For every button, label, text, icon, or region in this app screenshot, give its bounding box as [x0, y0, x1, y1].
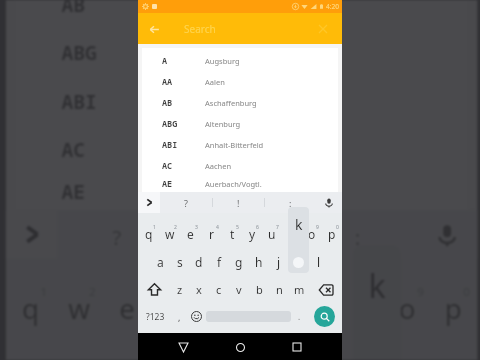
button[interactable]: w: [159, 220, 180, 248]
button[interactable]: c: [209, 276, 229, 303]
button[interactable]: k: [289, 248, 309, 276]
button[interactable]: Back: [143, 18, 165, 40]
button[interactable]: u: [292, 275, 339, 340]
button[interactable]: g: [216, 339, 262, 360]
button[interactable]: d: [189, 248, 209, 276]
button[interactable]: n: [269, 276, 289, 303]
button[interactable]: ABI: [15, 76, 468, 125]
button[interactable]: w: [54, 275, 103, 340]
staticText: AB: [61, 0, 161, 18]
button[interactable]: AE: [142, 176, 338, 192]
button[interactable]: u: [262, 220, 282, 248]
button[interactable]: t: [200, 275, 246, 340]
button[interactable]: Voice input: [316, 192, 342, 213]
button[interactable]: :: [299, 210, 417, 259]
button[interactable]: q: [138, 220, 159, 248]
button[interactable]: p: [322, 220, 342, 248]
button[interactable]: j: [309, 339, 355, 360]
button[interactable]: Emoji: [186, 303, 206, 330]
button[interactable]: ?123: [138, 303, 172, 330]
button[interactable]: a: [151, 248, 170, 276]
staticText: !: [235, 222, 241, 249]
button[interactable]: AB: [142, 92, 338, 113]
button[interactable]: o: [302, 220, 322, 248]
button[interactable]: t: [222, 220, 242, 248]
button[interactable]: d: [124, 339, 170, 360]
button[interactable]: q: [6, 275, 54, 340]
button[interactable]: .: [291, 303, 307, 330]
button[interactable]: !: [179, 210, 297, 259]
button[interactable]: h: [262, 339, 309, 360]
staticText: e: [187, 226, 194, 242]
staticText: f: [217, 254, 222, 270]
staticText: Aalen: [205, 77, 225, 87]
button[interactable]: AE: [15, 173, 468, 210]
button[interactable]: i: [339, 275, 385, 340]
button[interactable]: Recents: [285, 335, 309, 359]
button[interactable]: e: [180, 220, 201, 248]
staticText: Altenburg: [205, 119, 241, 129]
button[interactable]: !: [213, 192, 264, 213]
staticText: AE: [61, 178, 161, 205]
button[interactable]: z: [170, 276, 189, 303]
button[interactable]: Expand suggestions: [138, 192, 160, 213]
button[interactable]: AB: [15, 0, 468, 28]
staticText: Anhalt-Bitterfeld: [205, 140, 264, 150]
button[interactable]: r: [201, 220, 222, 248]
button[interactable]: h: [249, 248, 269, 276]
button[interactable]: p: [431, 275, 477, 340]
staticText: AC: [61, 136, 161, 164]
button[interactable]: Search: [314, 306, 335, 327]
button[interactable]: Shift: [138, 276, 170, 303]
staticText: ABG: [162, 118, 205, 130]
button[interactable]: A: [142, 50, 338, 71]
button[interactable]: r: [151, 275, 200, 340]
staticText: z: [177, 282, 183, 297]
button[interactable]: AC: [142, 155, 338, 176]
button[interactable]: j: [269, 248, 289, 276]
button[interactable]: ?: [160, 192, 212, 213]
button[interactable]: i: [282, 220, 302, 248]
button[interactable]: y: [242, 220, 262, 248]
button[interactable]: Home: [228, 335, 252, 359]
button[interactable]: Voice input: [417, 210, 477, 259]
button[interactable]: x: [189, 276, 209, 303]
button[interactable]: m: [289, 276, 309, 303]
button[interactable]: :: [265, 192, 316, 213]
button[interactable]: Back: [171, 335, 195, 359]
button[interactable]: s: [170, 248, 189, 276]
button[interactable]: Expand suggestions: [6, 210, 57, 259]
button[interactable]: AA: [142, 71, 338, 92]
staticText: o: [399, 289, 417, 326]
button[interactable]: f: [170, 339, 216, 360]
staticText: AB: [162, 97, 205, 109]
button[interactable]: AC: [15, 125, 468, 173]
button[interactable]: g: [229, 248, 249, 276]
button[interactable]: y: [246, 275, 292, 340]
staticText: u: [268, 226, 276, 242]
button[interactable]: e: [103, 275, 151, 340]
button[interactable]: ,: [172, 303, 186, 330]
staticText: .: [298, 311, 301, 322]
button[interactable]: ?: [57, 210, 177, 259]
staticText: g: [235, 254, 243, 270]
button[interactable]: Clear: [315, 21, 331, 37]
button[interactable]: l: [309, 248, 329, 276]
button[interactable]: ABG: [142, 113, 338, 134]
button[interactable]: Backspace: [309, 276, 342, 303]
button[interactable]: f: [209, 248, 229, 276]
button[interactable]: ABI: [142, 134, 338, 155]
button[interactable]: b: [249, 276, 269, 303]
button[interactable]: v: [229, 276, 249, 303]
staticText: c: [216, 282, 222, 297]
button[interactable]: ABG: [15, 28, 468, 76]
